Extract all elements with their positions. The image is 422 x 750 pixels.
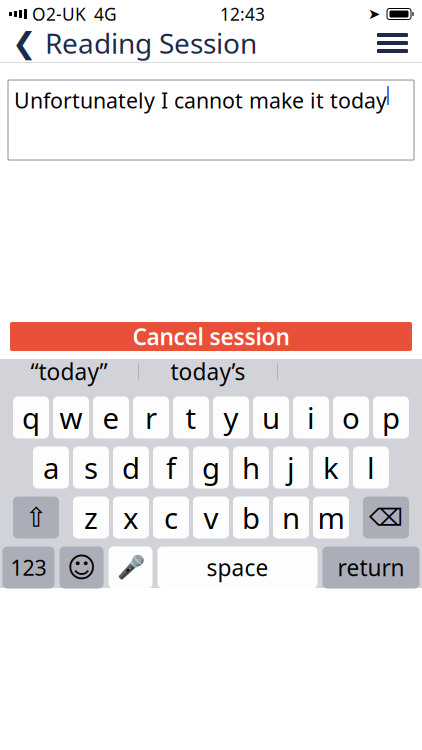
staticText: ➤ [368,6,380,22]
button[interactable]: ❮ [0,18,257,68]
button[interactable]: y [213,396,249,438]
button[interactable]: c [153,496,189,538]
button[interactable]: o [333,396,369,438]
staticText: o [342,398,360,437]
button[interactable]: l [353,446,389,488]
button[interactable]: v [193,496,229,538]
staticText: g [202,448,220,487]
staticText: h [242,448,260,487]
button[interactable]: space [157,546,317,588]
button[interactable]: Cancel session [10,322,412,351]
staticText: a [43,448,59,487]
staticText: r [145,398,157,437]
button[interactable]: i [293,396,329,438]
staticText: 12:43 [220,2,265,25]
button[interactable]: n [273,496,309,538]
staticText: t [185,398,196,437]
staticText: x [123,498,139,537]
staticText: i [307,398,315,437]
button[interactable]: q [13,396,49,438]
button[interactable]: a [33,446,69,488]
staticText: j [287,448,295,487]
staticText: c [164,498,178,537]
staticText: ⌫ [369,504,403,531]
staticText: e [102,398,119,437]
staticText: return [337,552,404,582]
button[interactable]: x [113,496,149,538]
staticText: b [242,498,260,537]
button[interactable]: p [373,396,409,438]
button[interactable]: z [73,496,109,538]
button[interactable]: m [313,496,349,538]
button[interactable]: 123 [2,546,54,588]
button[interactable]: Menu [363,23,422,63]
button[interactable]: e [93,396,129,438]
button[interactable]: j [273,446,309,488]
staticText: 123 [10,553,46,582]
staticText: f [166,448,176,487]
staticText: y [223,398,238,437]
staticText: 4G [94,2,117,25]
staticText: l [367,448,375,487]
button[interactable]: today’s [139,350,277,392]
button[interactable]: Dictation [108,546,152,588]
staticText: u [262,398,280,437]
staticText: s [84,448,98,487]
staticText: q [22,398,40,437]
button[interactable]: t [173,396,209,438]
staticText: “today” [30,356,107,386]
staticText: v [203,498,218,537]
staticText: k [323,448,339,487]
button[interactable]: “today” [0,350,138,392]
staticText: Unfortunately I cannot make it today [14,86,387,114]
staticText: ❮ [12,26,37,60]
button[interactable]: d [113,446,149,488]
staticText: z [84,498,98,537]
button[interactable]: b [233,496,269,538]
button[interactable]: Delete [363,496,409,538]
button[interactable]: Emoji [59,546,103,588]
staticText: m [317,498,344,537]
button[interactable]: k [313,446,349,488]
staticText: O2-UK [32,2,86,25]
button[interactable]: Shift [13,496,59,538]
button[interactable]: g [193,446,229,488]
staticText: ☺ [67,552,96,583]
button[interactable]: return [322,546,419,588]
staticText: space [206,552,268,582]
staticText: 🎤 [116,555,144,580]
button[interactable]: u [253,396,289,438]
button[interactable]: w [53,396,89,438]
staticText: Reading Session [45,24,257,62]
button[interactable]: h [233,446,269,488]
staticText: n [282,498,300,537]
staticText: w [59,398,82,437]
button[interactable]: s [73,446,109,488]
button[interactable]: r [133,396,169,438]
staticText: ⇧ [25,502,47,533]
staticText: Cancel session [132,321,289,351]
button[interactable]: f [153,446,189,488]
staticText: p [382,398,400,437]
staticText: today’s [170,356,245,386]
staticText: d [122,448,140,487]
